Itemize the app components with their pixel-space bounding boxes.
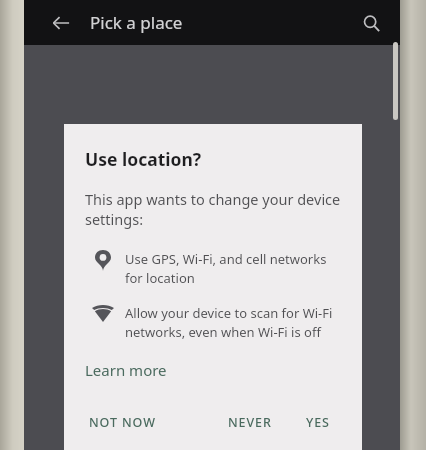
staticText: NEVER	[228, 414, 272, 431]
button[interactable]: Search	[352, 4, 390, 42]
button[interactable]: NEVER	[224, 408, 276, 437]
button[interactable]: Back	[44, 6, 78, 40]
staticText: YES	[306, 414, 330, 431]
staticText: Allow your device to scan for Wi-Fi netw…	[125, 304, 344, 341]
staticText: Learn more	[85, 360, 167, 380]
button[interactable]: Learn more	[85, 358, 167, 382]
staticText: Use location?	[85, 147, 202, 171]
button[interactable]: YES	[302, 408, 334, 437]
button[interactable]: NOT NOW	[85, 408, 160, 437]
staticText: This app wants to change your device set…	[85, 189, 344, 230]
staticText: NOT NOW	[89, 414, 156, 431]
staticText: Use GPS, Wi-Fi, and cell networks for lo…	[125, 250, 344, 287]
staticText: Pick a place	[90, 11, 183, 34]
